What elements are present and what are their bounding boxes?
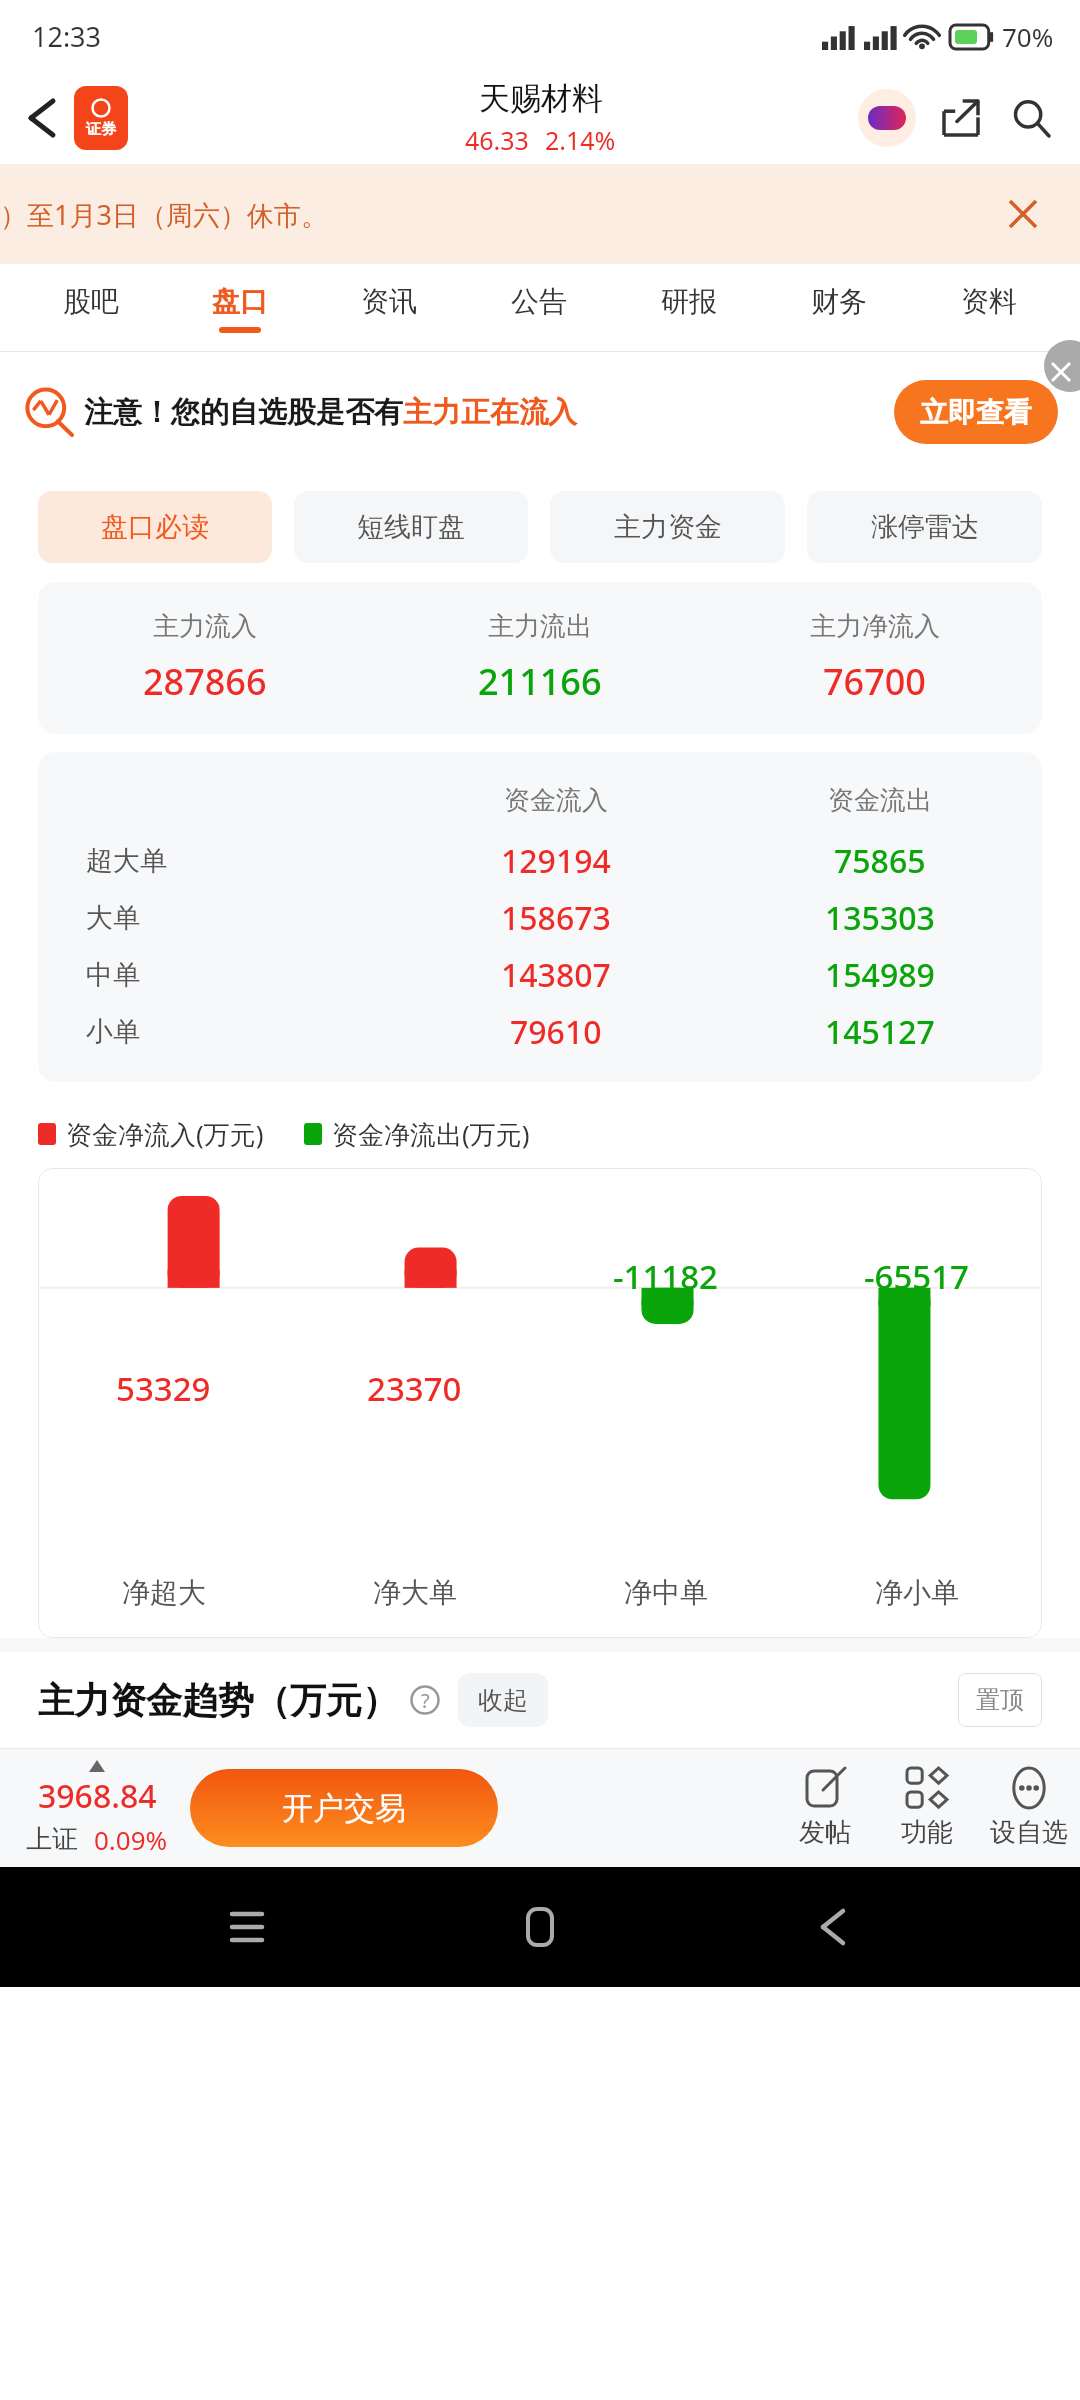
staticText: 154989	[825, 953, 935, 997]
staticText: 股吧	[63, 284, 119, 319]
staticText: ）至1月3日（周六）休市。	[0, 196, 328, 233]
staticText: 上证	[26, 1823, 78, 1856]
button[interactable]: 研报	[614, 264, 764, 352]
staticText: 主力净流入	[810, 610, 940, 643]
button[interactable]: 财务	[764, 264, 914, 352]
staticText: -11182	[613, 1254, 718, 1299]
staticText: 135303	[825, 896, 935, 940]
staticText: 2.14%	[545, 123, 616, 157]
staticText: 287866	[143, 657, 267, 706]
button[interactable]: 3968.84	[26, 1760, 168, 1857]
button[interactable]: Recents	[201, 1881, 293, 1973]
button[interactable]: 设自选	[978, 1749, 1080, 1867]
staticText: 53329	[116, 1366, 211, 1411]
staticText: 主力正在流入	[403, 394, 577, 431]
button[interactable]: 资讯	[314, 264, 464, 352]
button[interactable]: 证券	[74, 86, 128, 150]
staticText: 主力流出	[488, 610, 592, 643]
staticText: 资金流入	[504, 784, 608, 817]
staticText: 盘口	[212, 284, 268, 319]
button[interactable]: 股吧	[16, 264, 165, 352]
button[interactable]: 资金流入	[38, 752, 1042, 1082]
staticText: 46.33	[465, 123, 529, 157]
button[interactable]: 开户交易	[190, 1769, 498, 1847]
button[interactable]: 资料	[914, 264, 1064, 352]
staticText: 12:33	[32, 18, 102, 55]
staticText: -65517	[864, 1254, 969, 1299]
button[interactable]: Home	[494, 1881, 586, 1973]
staticText: 注意！您的自选股是否有	[84, 394, 403, 431]
staticText: 3968.84	[38, 1774, 157, 1818]
staticText: 涨停雷达	[871, 510, 979, 544]
button[interactable]: 公告	[464, 264, 614, 352]
staticText: 资金净流入(万元)	[66, 1116, 264, 1152]
staticText: 75865	[834, 839, 926, 883]
staticText: 主力资金	[614, 510, 722, 544]
button[interactable]: Help	[406, 1681, 444, 1719]
staticText: 净中单	[624, 1575, 708, 1610]
staticText: 置顶	[976, 1685, 1024, 1715]
button[interactable]: Back	[14, 90, 70, 146]
staticText: 净超大	[122, 1575, 206, 1610]
staticText: 中单	[86, 958, 140, 992]
button[interactable]: Share	[932, 89, 990, 147]
staticText: 143807	[501, 953, 611, 997]
button[interactable]: 功能	[876, 1749, 978, 1867]
staticText: 主力资金趋势（万元）	[38, 1678, 398, 1723]
staticText: 研报	[661, 284, 717, 319]
staticText: 大单	[86, 901, 140, 935]
staticText: 天赐材料	[479, 79, 603, 118]
staticText: 23370	[367, 1366, 462, 1411]
staticText: ?	[421, 1687, 430, 1714]
staticText: 公告	[511, 284, 567, 319]
button[interactable]: 主力资金	[550, 491, 785, 563]
button[interactable]: Search	[1002, 89, 1060, 147]
button[interactable]: 注意！您的自选股是否有	[26, 352, 1058, 472]
staticText: 财务	[811, 284, 867, 319]
button[interactable]: Back	[787, 1881, 879, 1973]
button[interactable]: 短线盯盘	[294, 491, 528, 563]
staticText: 211166	[478, 657, 602, 706]
button[interactable]: 置顶	[976, 1673, 1024, 1727]
staticText: 净小单	[875, 1575, 959, 1610]
staticText: 发帖	[799, 1816, 851, 1849]
staticText: 小单	[86, 1015, 140, 1049]
button[interactable]: 53329	[38, 1168, 1042, 1638]
staticText: 短线盯盘	[357, 510, 465, 544]
staticText: 盘口必读	[101, 510, 209, 544]
button[interactable]: 盘口必读	[38, 491, 272, 563]
button[interactable]: 涨停雷达	[807, 491, 1042, 563]
staticText: 证券	[86, 120, 116, 139]
staticText: 开户交易	[282, 1789, 406, 1828]
staticText: 145127	[825, 1010, 935, 1054]
staticText: 0.09%	[94, 1822, 168, 1857]
button[interactable]: Close ad	[1044, 340, 1080, 392]
staticText: 资金流出	[828, 784, 932, 817]
staticText: 资料	[961, 284, 1017, 319]
staticText: 76700	[823, 657, 926, 706]
button[interactable]: 收起	[478, 1673, 528, 1727]
staticText: 129194	[501, 839, 611, 883]
staticText: 设自选	[990, 1816, 1068, 1849]
staticText: 主力流入	[153, 610, 257, 643]
staticText: 资讯	[361, 284, 417, 319]
button[interactable]: 盘口	[165, 264, 314, 352]
button[interactable]: 发帖	[774, 1749, 876, 1867]
button[interactable]: AI assistant	[858, 89, 916, 147]
staticText: 158673	[501, 896, 611, 940]
staticText: 70%	[1002, 19, 1054, 54]
staticText: 资金净流出(万元)	[332, 1116, 530, 1152]
button[interactable]: 主力流入	[38, 582, 1042, 734]
staticText: 净大单	[373, 1575, 457, 1610]
staticText: 立即查看	[920, 395, 1032, 430]
staticText: 收起	[478, 1685, 528, 1716]
button[interactable]: Close notice	[998, 189, 1048, 239]
staticText: 超大单	[86, 844, 167, 878]
staticText: 功能	[901, 1816, 953, 1849]
staticText: 79610	[510, 1010, 602, 1054]
button[interactable]: 立即查看	[920, 380, 1032, 444]
